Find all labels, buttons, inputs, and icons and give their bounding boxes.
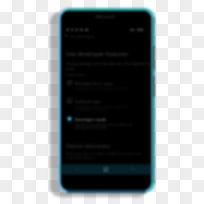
staticText: Windows Store apps	[75, 81, 114, 86]
staticText: Learn more	[66, 72, 86, 77]
staticText: Use developer features	[66, 50, 128, 58]
staticText: Device discovery	[66, 142, 111, 150]
staticText: only.	[66, 66, 75, 71]
staticText: Microsoft	[96, 13, 116, 19]
staticText: Developer mode	[75, 117, 107, 122]
staticText: These settings are intended for developm…	[66, 61, 156, 66]
staticText: Sideload apps	[75, 99, 102, 104]
